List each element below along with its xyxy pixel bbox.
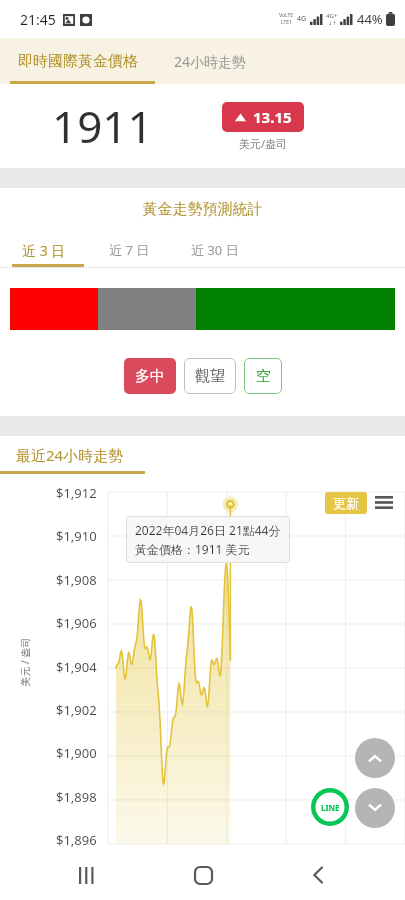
staticText: $1,910 xyxy=(56,527,97,545)
staticText: 4G+ xyxy=(326,12,338,20)
staticText: VoLTE xyxy=(279,12,294,19)
button[interactable]: 即時國際黃金價格 xyxy=(0,38,155,84)
staticText: 1911 xyxy=(52,96,153,156)
button[interactable]: Menu xyxy=(375,496,393,510)
button[interactable]: 更新 xyxy=(325,492,367,514)
staticText: 44% xyxy=(357,10,383,28)
staticText: 13.15 xyxy=(253,107,292,127)
staticText: 美元/盎司 xyxy=(239,136,288,151)
button[interactable]: 多中 xyxy=(124,358,176,394)
button[interactable]: 近 3 日 xyxy=(0,233,88,267)
staticText: 即時國際黃金價格 xyxy=(18,52,138,71)
staticText: 觀望 xyxy=(195,367,225,386)
staticText: 黃金走勢預測統計 xyxy=(0,200,405,219)
button[interactable]: 最近24小時走勢 xyxy=(16,445,124,465)
button[interactable]: 空 xyxy=(244,358,282,394)
staticText: $1,898 xyxy=(56,788,97,806)
staticText: 4G xyxy=(297,14,307,24)
staticText: 空 xyxy=(256,367,271,386)
button[interactable]: 觀望 xyxy=(184,358,236,394)
button[interactable]: Scroll down xyxy=(355,788,395,828)
button[interactable]: LINE xyxy=(311,788,349,826)
button[interactable]: 近 7 日 xyxy=(88,233,170,267)
button[interactable]: Home xyxy=(175,850,231,900)
staticText: 近 30 日 xyxy=(191,241,239,259)
button[interactable]: 13.15 xyxy=(222,102,304,132)
staticText: 美元 / 盎司 xyxy=(17,637,31,686)
staticText: $1,908 xyxy=(56,571,97,589)
staticText: 24小時走勢 xyxy=(174,52,247,71)
staticText: 黃金價格：1911 美元 xyxy=(135,541,250,557)
staticText: LTE1 xyxy=(281,19,292,26)
staticText: $1,904 xyxy=(56,658,97,676)
staticText: $1,912 xyxy=(56,484,97,502)
staticText: $1,906 xyxy=(56,614,97,632)
staticText: 2022年04月26日 21點44分 xyxy=(135,522,281,538)
button[interactable]: 近 30 日 xyxy=(170,233,260,267)
staticText: $1,900 xyxy=(56,744,97,762)
button[interactable]: 24小時走勢 xyxy=(155,38,265,84)
staticText: 更新 xyxy=(333,495,359,511)
staticText: $1,896 xyxy=(56,831,97,849)
button[interactable]: Recents xyxy=(59,850,115,900)
button[interactable]: Back xyxy=(290,850,346,900)
button[interactable]: Scroll up xyxy=(355,738,395,778)
staticText: 近 3 日 xyxy=(22,241,66,260)
staticText: 21:45 xyxy=(20,10,56,29)
staticText: ↓↑ xyxy=(328,20,337,26)
staticText: $1,902 xyxy=(56,701,97,719)
staticText: LINE xyxy=(321,802,340,813)
staticText: 多中 xyxy=(135,367,165,386)
staticText: 近 7 日 xyxy=(109,241,150,259)
